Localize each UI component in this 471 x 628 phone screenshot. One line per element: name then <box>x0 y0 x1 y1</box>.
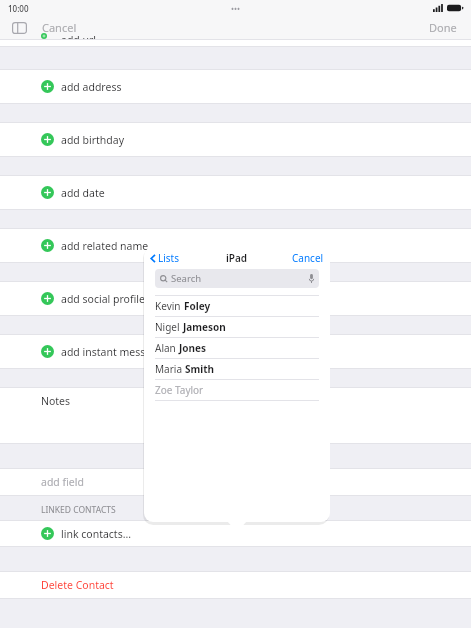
staticText: add date <box>61 186 105 200</box>
staticText: LINKED CONTACTS <box>41 504 116 516</box>
button[interactable]: Notes <box>0 388 471 443</box>
staticText: ••• <box>231 3 241 14</box>
button[interactable]: add address <box>0 70 471 103</box>
button[interactable]: add birthday <box>0 123 471 156</box>
staticText: Cancel <box>42 20 77 35</box>
staticText: Search <box>171 272 202 285</box>
staticText: add birthday <box>61 133 125 147</box>
button[interactable]: Kevin <box>144 296 330 316</box>
button[interactable]: Maria <box>144 359 330 379</box>
staticText: add address <box>61 80 122 94</box>
button[interactable]: add related name <box>0 229 471 262</box>
staticText: Kevin <box>155 299 184 313</box>
staticText: Notes <box>41 394 71 408</box>
staticText: Maria <box>155 362 185 376</box>
staticText: Jones <box>179 341 207 355</box>
button[interactable]: add social profile <box>0 282 471 315</box>
staticText: 10:00 <box>8 3 29 14</box>
staticText: Done <box>429 20 457 35</box>
staticText: Zoe Taylor <box>155 383 204 397</box>
staticText: add field <box>41 475 84 489</box>
button[interactable]: Nigel <box>144 317 330 337</box>
button[interactable]: add field <box>0 469 471 495</box>
staticText: Delete Contact <box>41 578 114 592</box>
button[interactable]: Cancel <box>286 249 330 267</box>
staticText: Nigel <box>155 320 183 334</box>
staticText: add instant message <box>61 345 164 359</box>
button[interactable]: add instant message <box>0 335 471 368</box>
staticText: add social profile <box>61 292 145 306</box>
button[interactable]: Search <box>155 269 319 288</box>
button[interactable]: add date <box>0 176 471 209</box>
staticText: Alan <box>155 341 179 355</box>
button[interactable]: Done <box>425 17 461 38</box>
staticText: link contacts... <box>61 527 132 541</box>
button[interactable]: Zoe Taylor <box>144 380 330 400</box>
staticText: add url <box>61 33 97 39</box>
button[interactable]: Toggle sidebar <box>10 19 28 37</box>
staticText: Jameson <box>183 320 226 334</box>
button[interactable]: Alan <box>144 338 330 358</box>
button[interactable]: Delete Contact <box>0 572 471 598</box>
staticText: Smith <box>185 362 215 376</box>
button[interactable]: Lists <box>144 249 184 267</box>
staticText: add related name <box>61 239 149 253</box>
staticText: iPad <box>226 251 248 265</box>
button[interactable]: link contacts... <box>0 521 471 546</box>
other: Dictation <box>309 274 314 283</box>
staticText: Cancel <box>292 251 324 265</box>
button[interactable]: Cancel <box>38 17 81 38</box>
staticText: Lists <box>158 251 180 265</box>
staticText: Foley <box>184 299 211 313</box>
